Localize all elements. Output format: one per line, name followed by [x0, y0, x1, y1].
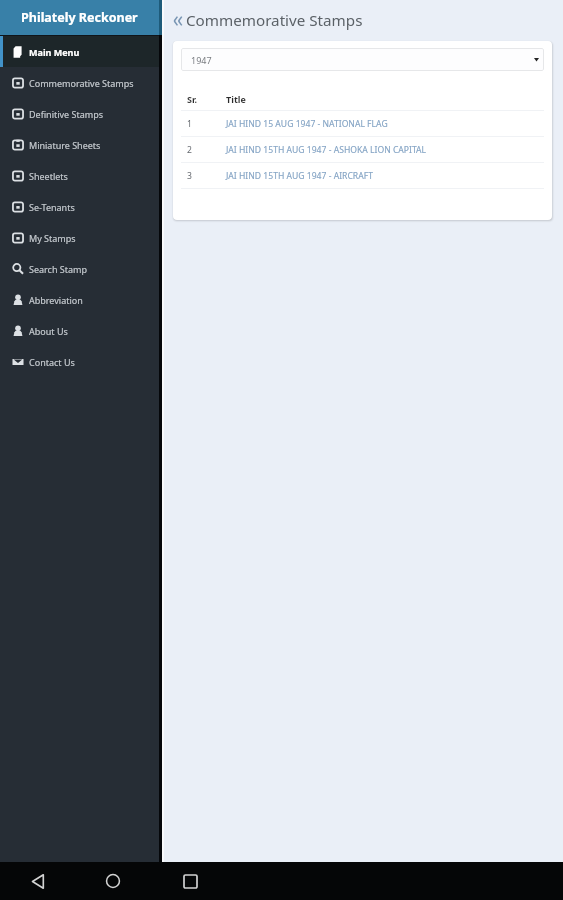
staticText: Main Menu	[29, 46, 80, 58]
staticText: 3	[187, 170, 226, 182]
button[interactable]: Se-Tenants	[0, 191, 159, 222]
button[interactable]: My Stamps	[0, 222, 159, 253]
staticText: 1947	[191, 54, 212, 66]
button[interactable]: Definitive Stamps	[0, 98, 159, 129]
button[interactable]: Miniature Sheets	[0, 129, 159, 160]
staticText: Commemorative Stamps	[186, 10, 363, 31]
button[interactable]: Sheetlets	[0, 160, 159, 191]
staticText: About Us	[29, 325, 68, 337]
staticText: My Stamps	[29, 232, 76, 244]
staticText: JAI HIND 15 AUG 1947 - NATIONAL FLAG	[226, 118, 388, 130]
button[interactable]: Abbreviation	[0, 284, 159, 315]
button[interactable]: Back	[24, 867, 52, 895]
staticText: Se-Tenants	[29, 201, 75, 213]
staticText: Contact Us	[29, 356, 75, 368]
staticText: Commemorative Stamps	[29, 77, 134, 89]
staticText: Title	[226, 93, 246, 105]
staticText: 1	[187, 118, 226, 130]
button[interactable]: Main Menu	[0, 36, 159, 67]
staticText: Philately Reckoner	[21, 9, 138, 26]
button[interactable]: 3	[181, 163, 544, 188]
staticText: Definitive Stamps	[29, 108, 104, 120]
staticText: Search Stamp	[29, 263, 88, 275]
button[interactable]: Recent apps	[176, 867, 204, 895]
staticText: JAI HIND 15TH AUG 1947 - ASHOKA LION CAP…	[226, 144, 427, 156]
staticText: JAI HIND 15TH AUG 1947 - AIRCRAFT	[226, 170, 373, 182]
button[interactable]: Home	[99, 867, 127, 895]
button[interactable]: 1	[181, 111, 544, 136]
staticText: Abbreviation	[29, 294, 83, 306]
staticText: Sr.	[187, 93, 226, 105]
button[interactable]: 1947	[181, 48, 544, 71]
staticText: Sheetlets	[29, 170, 68, 182]
button[interactable]: Philately Reckoner	[0, 0, 159, 35]
button[interactable]: Commemorative Stamps	[0, 67, 159, 98]
staticText: 2	[187, 144, 226, 156]
staticText: Miniature Sheets	[29, 139, 101, 151]
button[interactable]: 2	[181, 137, 544, 162]
button[interactable]: Search Stamp	[0, 253, 159, 284]
button[interactable]: Contact Us	[0, 346, 159, 377]
button[interactable]: About Us	[0, 315, 159, 346]
